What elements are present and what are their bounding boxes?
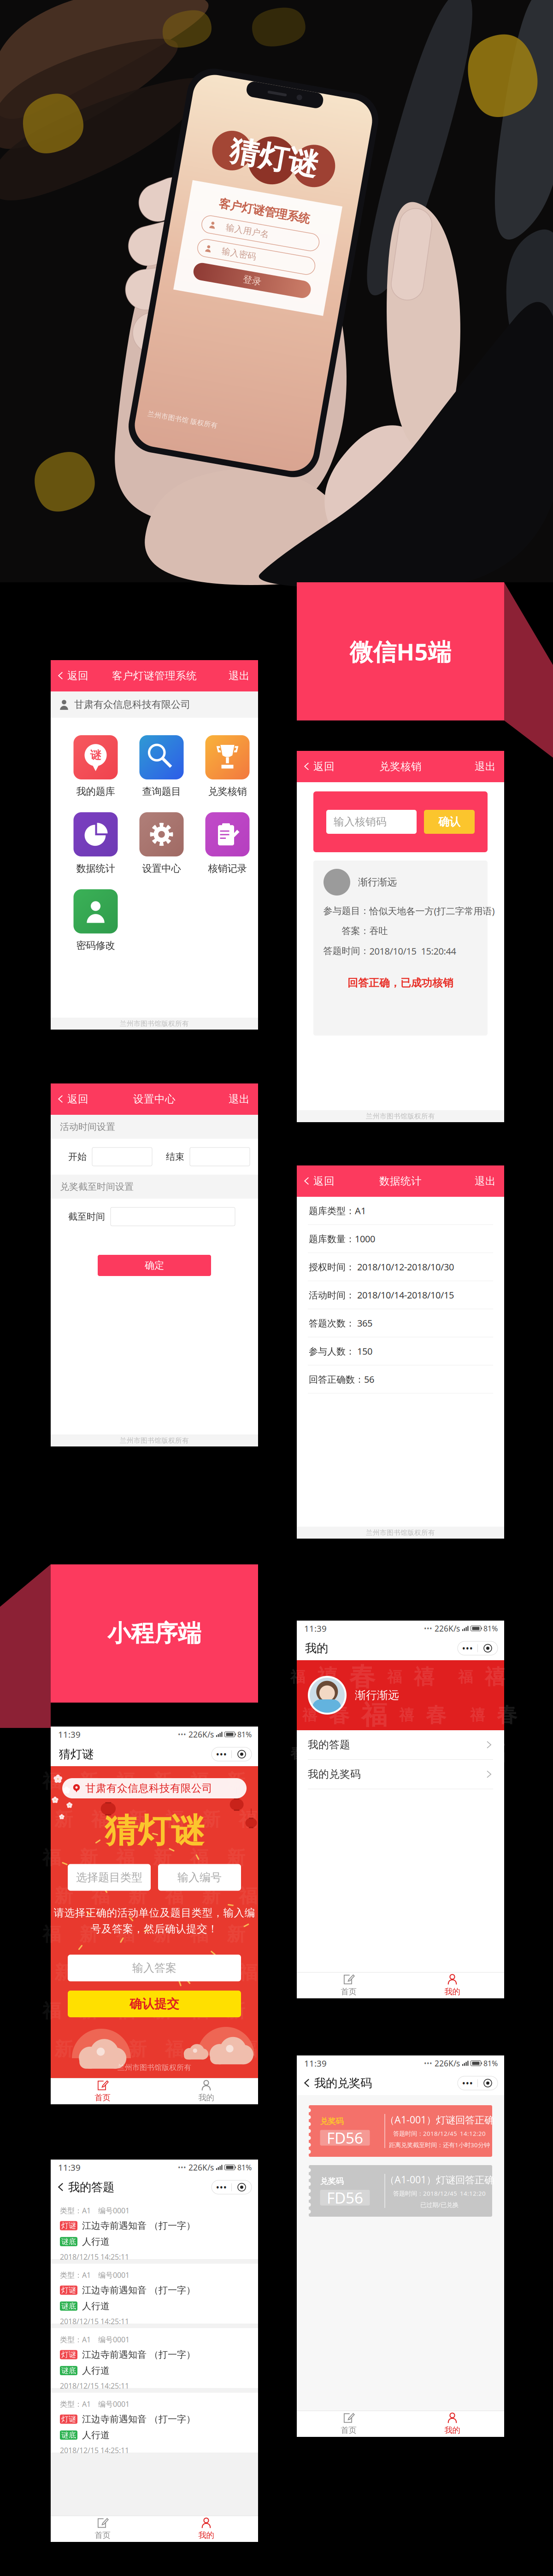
staticText: 编号0001 [98, 2270, 129, 2280]
staticText: 渐行渐远 [355, 1688, 399, 1702]
button[interactable]: 查询题目 [139, 735, 184, 797]
button[interactable]: 确认提交 [68, 1991, 241, 2017]
staticText: 兰州市图书馆版权所有 [366, 1112, 435, 1120]
staticText: 11:39 [58, 1729, 81, 1740]
staticText: 我的 [198, 2530, 214, 2540]
button[interactable]: 退出 [198, 1083, 258, 1115]
staticText: 新 [128, 1961, 147, 1984]
button[interactable]: More [458, 2076, 477, 2090]
button[interactable]: 退出 [444, 1165, 504, 1197]
staticText: 福 [165, 1808, 183, 1831]
staticText: 福 [116, 1846, 135, 1869]
button[interactable]: 返回 [297, 1165, 357, 1197]
button[interactable]: 确定 [98, 1255, 211, 1276]
button[interactable]: 密码修改 [74, 889, 118, 952]
button[interactable]: 兑奖核销 [205, 735, 250, 797]
staticText: 我的 [444, 1987, 460, 1997]
button[interactable]: 首页 [51, 2078, 154, 2104]
staticText: 数据统计 [76, 862, 115, 875]
staticText: 我的兑奖码 [308, 1768, 361, 1781]
staticText: 设置中心 [142, 862, 181, 875]
staticText: 兑奖码 [320, 2116, 344, 2126]
button[interactable]: 我的 [154, 2516, 258, 2542]
button[interactable]: 我的答题 [297, 1730, 504, 1760]
staticText: 客户灯谜管理系统 [112, 669, 197, 682]
button[interactable]: 我的答题 [51, 2175, 114, 2199]
button[interactable]: 退出 [444, 751, 504, 782]
button[interactable]: 我的 [400, 2411, 504, 2437]
button[interactable]: 我的兑奖码 [297, 1760, 504, 1789]
staticText: 春 [349, 1661, 375, 1693]
button[interactable]: Close [478, 2076, 498, 2090]
staticText: ••• [462, 2077, 473, 2089]
staticText: 输入答案 [132, 1961, 176, 1975]
staticText: 兑奖核销 [379, 760, 422, 773]
staticText: 新 [79, 1923, 98, 1946]
button[interactable]: 我的 [400, 1973, 504, 1998]
staticText: 新 [227, 1923, 245, 1946]
staticText: （A1-001）灯谜回答正确 [385, 2173, 494, 2186]
button[interactable]: 我的兑奖码 [297, 2071, 372, 2095]
staticText: 答题时间： [323, 945, 369, 957]
staticText: 灯谜 [61, 2350, 76, 2359]
staticText: 距离兑奖截至时间：还有1小时30分钟 [389, 2141, 490, 2149]
staticText: 2018/12/15 14:25:11 [60, 2316, 129, 2326]
staticText: 答案： [342, 925, 369, 937]
staticText: FD56 [327, 2187, 363, 2208]
button[interactable]: More [212, 2180, 231, 2194]
button[interactable]: 返回 [51, 1083, 111, 1115]
button[interactable]: Close [232, 2180, 252, 2194]
button[interactable]: 首页 [51, 2516, 154, 2542]
staticText: 春 [426, 1703, 446, 1728]
button[interactable]: More [458, 1641, 477, 1655]
staticText: 答题时间：2018/12/45 14:12:20 [393, 2189, 486, 2197]
button[interactable]: 返回 [297, 751, 357, 782]
button[interactable]: More [212, 1747, 231, 1761]
button[interactable]: 退出 [198, 660, 258, 691]
staticText: 福 [290, 1668, 305, 1686]
staticText: 类型：A1 [60, 2399, 91, 2409]
staticText: 猜灯谜 [209, 138, 298, 174]
button[interactable]: 设置中心 [139, 812, 184, 875]
button[interactable]: Close [232, 1747, 252, 1761]
button[interactable]: 首页 [297, 2411, 400, 2437]
staticText: 福 [165, 1961, 183, 1984]
staticText: 截至时间 [68, 1211, 105, 1222]
button[interactable]: 确认 [424, 810, 475, 834]
staticText: 输入核销码 [334, 815, 387, 828]
button[interactable]: 数据统计 [74, 812, 118, 875]
staticText: ••• [424, 1624, 432, 1633]
staticText: 禧 [317, 1665, 337, 1689]
staticText: 我的 [444, 2425, 460, 2435]
staticText: 人行道 [82, 2236, 110, 2247]
staticText: 类型：A1 [60, 2335, 91, 2344]
button[interactable]: 谜 [74, 735, 118, 797]
staticText: 福 [116, 1770, 135, 1792]
staticText: 禧 [485, 1665, 505, 1689]
staticText: 春 [458, 1744, 473, 1762]
staticText: 81% [237, 1729, 252, 1739]
button[interactable]: 核销记录 [205, 812, 250, 875]
staticText: 春 [329, 1703, 349, 1728]
button[interactable]: 首页 [297, 1973, 400, 1998]
staticText: 参与人数： 150 [309, 1345, 372, 1357]
staticText: 福 [116, 2000, 135, 2022]
staticText: 答题时间：2018/12/45 14:12:20 [393, 2129, 486, 2138]
staticText: 81% [483, 1624, 498, 1633]
staticText: 渐行渐远 [358, 876, 397, 888]
staticText: 猜灯谜 [59, 1747, 94, 1761]
staticText: ••• [424, 2059, 432, 2068]
staticText: 2018/12/15 14:25:11 [60, 2252, 129, 2262]
staticText: 编号0001 [98, 2206, 129, 2215]
staticText: 兰州市图书馆版权所有 [120, 1436, 189, 1445]
button[interactable]: 返回 [51, 660, 111, 691]
staticText: 新 [79, 2000, 98, 2022]
button[interactable]: 我的 [154, 2078, 258, 2104]
button[interactable]: Close [478, 1641, 498, 1655]
staticText: 我的答题 [68, 2180, 114, 2194]
staticText: 禧 [414, 1665, 434, 1689]
staticText: 新 [153, 1846, 171, 1869]
staticText: 回答正确，已成功核销 [347, 976, 453, 989]
staticText: 兑奖核销 [208, 785, 247, 797]
